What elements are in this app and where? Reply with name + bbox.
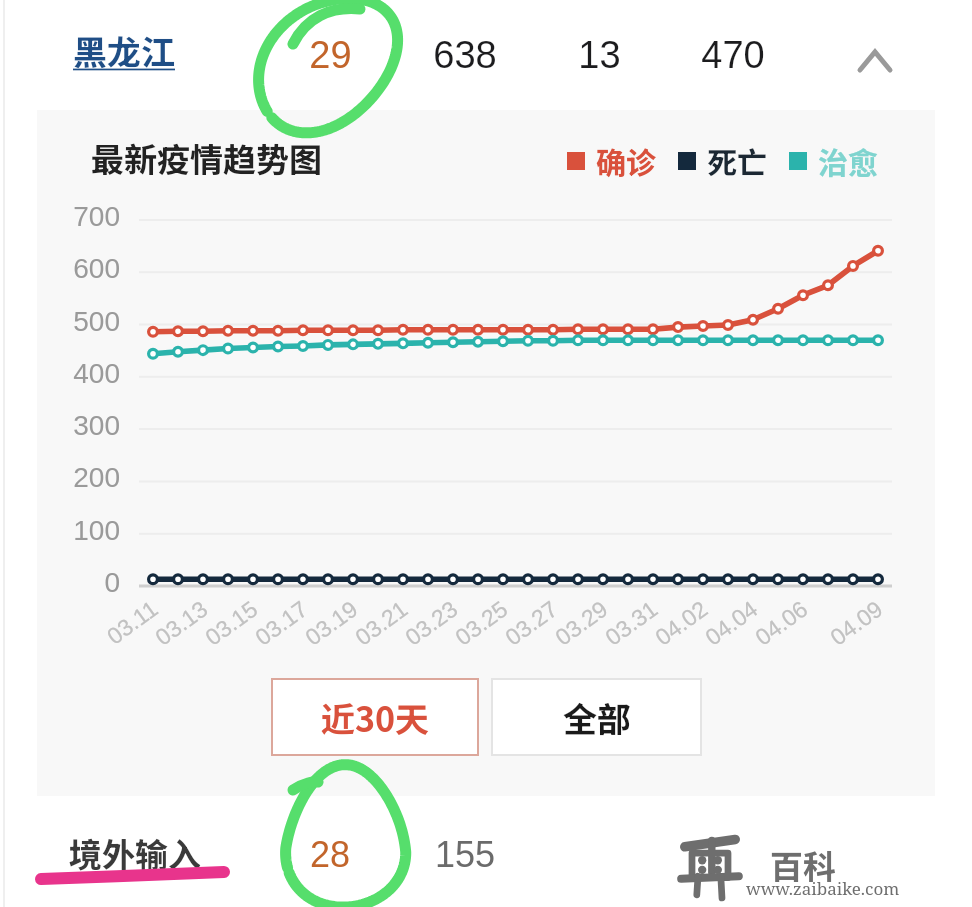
staticText: 300 <box>73 410 120 441</box>
staticText: 04.06 <box>750 595 813 651</box>
staticText: 治愈 <box>818 139 878 182</box>
staticText: www.zaibaike.com <box>746 877 900 900</box>
staticText: 最新疫情趋势图 <box>91 134 322 182</box>
staticText: 29 <box>309 34 352 76</box>
staticText: 700 <box>73 201 120 232</box>
staticText: 200 <box>73 462 120 493</box>
button[interactable]: Collapse <box>845 35 905 87</box>
staticText: 03.17 <box>250 595 313 651</box>
button[interactable]: 境外输入 <box>69 829 201 877</box>
staticText: 03.11 <box>102 595 163 649</box>
staticText: 03.15 <box>200 595 263 651</box>
staticText: 03.31 <box>600 595 663 651</box>
staticText: 500 <box>73 306 120 337</box>
staticText: 600 <box>73 253 120 284</box>
staticText: 400 <box>73 358 120 389</box>
staticText: 04.09 <box>825 595 888 651</box>
staticText: 03.25 <box>450 595 513 651</box>
staticText: 100 <box>73 515 120 546</box>
staticText: 13 <box>578 34 621 76</box>
staticText: 0 <box>104 567 120 598</box>
staticText: 04.02 <box>650 595 713 651</box>
staticText: 04.04 <box>700 595 763 651</box>
button[interactable]: 全部 <box>491 678 702 756</box>
staticText: 确诊 <box>596 139 656 182</box>
staticText: 黑龙江 <box>73 26 175 75</box>
staticText: 死亡 <box>707 139 767 182</box>
staticText: 03.13 <box>150 595 213 651</box>
staticText: 28 <box>310 834 351 874</box>
staticText: 638 <box>433 34 497 76</box>
staticText: 03.19 <box>300 595 363 651</box>
staticText: 470 <box>701 34 765 76</box>
staticText: 全部 <box>563 693 631 742</box>
staticText: 155 <box>435 834 496 874</box>
button[interactable]: 近30天 <box>271 678 479 756</box>
staticText: 03.21 <box>350 595 413 651</box>
staticText: 百科 <box>770 841 836 889</box>
button[interactable]: 黑龙江 <box>73 26 175 75</box>
staticText: 境外输入 <box>69 829 201 877</box>
staticText: 03.27 <box>500 595 563 651</box>
staticText: 03.23 <box>400 595 463 651</box>
staticText: 03.29 <box>550 595 613 651</box>
staticText: 近30天 <box>321 693 430 742</box>
